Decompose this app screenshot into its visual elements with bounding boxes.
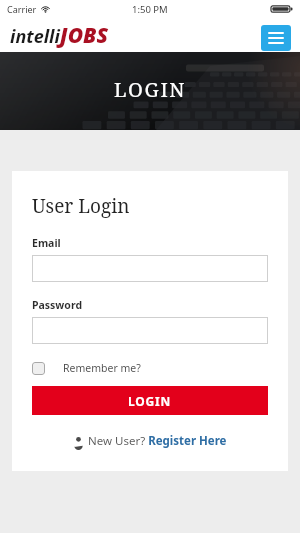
staticText: intelliJOBS — [10, 21, 108, 50]
button[interactable]: New User? Register Here — [32, 433, 268, 449]
button[interactable] — [32, 255, 268, 282]
staticText: User Login — [32, 193, 130, 219]
staticText: Password — [32, 298, 83, 312]
staticText: Carrier — [7, 3, 37, 15]
button[interactable] — [32, 317, 268, 344]
button[interactable]: Open navigation menu — [261, 25, 291, 51]
button[interactable]: LOGIN — [32, 386, 268, 415]
button[interactable]: Remember me? — [32, 361, 268, 375]
staticText: Remember me? — [63, 361, 141, 375]
staticText: Email — [32, 236, 61, 250]
staticText: 1:50 PM — [132, 3, 168, 16]
staticText: LOGIN — [114, 76, 187, 103]
staticText: New User? Register Here — [88, 433, 227, 449]
staticText: LOGIN — [128, 393, 172, 409]
